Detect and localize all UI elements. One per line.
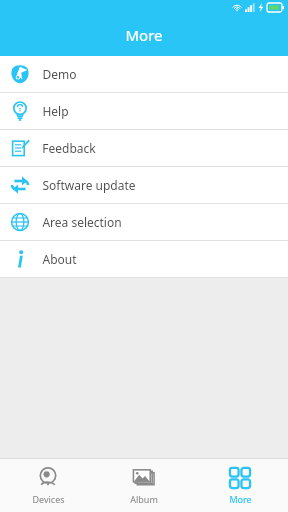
- staticText: More: [125, 25, 163, 45]
- button[interactable]: Help: [0, 93, 288, 129]
- staticText: Help: [42, 103, 69, 119]
- staticText: More: [229, 493, 252, 505]
- staticText: Devices: [32, 493, 65, 505]
- button[interactable]: Album: [96, 459, 192, 512]
- button[interactable]: More: [192, 459, 288, 512]
- button[interactable]: Devices: [0, 459, 96, 512]
- button[interactable]: Demo: [0, 56, 288, 92]
- button[interactable]: Software update: [0, 167, 288, 203]
- button[interactable]: Area selection: [0, 204, 288, 240]
- staticText: Software update: [42, 177, 136, 193]
- button[interactable]: About: [0, 241, 288, 277]
- staticText: Feedback: [42, 140, 96, 156]
- staticText: Demo: [42, 66, 77, 82]
- staticText: Area selection: [42, 214, 122, 230]
- staticText: About: [42, 251, 77, 267]
- staticText: Album: [130, 493, 158, 505]
- button[interactable]: Feedback: [0, 130, 288, 166]
